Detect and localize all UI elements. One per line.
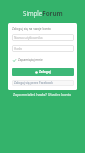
button[interactable]: Zaloguj [12, 68, 74, 76]
staticText: Hasło [14, 47, 23, 51]
staticText: Nazwa użytkownika [14, 36, 43, 40]
button[interactable]: Nazwa użytkownika [14, 34, 74, 41]
staticText: Zapomniałeś hasła? Utwórz konto [13, 92, 72, 97]
staticText: SimpleForum [23, 9, 63, 18]
button[interactable]: Hasło [14, 45, 74, 52]
staticText: Zaloguj [39, 70, 51, 74]
staticText: Zapamiętaj mnie [18, 58, 43, 62]
staticText: Zaloguj się przez Facebook [14, 81, 53, 85]
button[interactable]: Zapamiętaj mnie [13, 57, 43, 63]
button[interactable]: Zapomniałeś hasła? Utwórz konto [13, 92, 72, 97]
staticText: Zaloguj się na swoje konto [12, 27, 52, 31]
button[interactable]: Zaloguj się przez Facebook [14, 80, 74, 86]
